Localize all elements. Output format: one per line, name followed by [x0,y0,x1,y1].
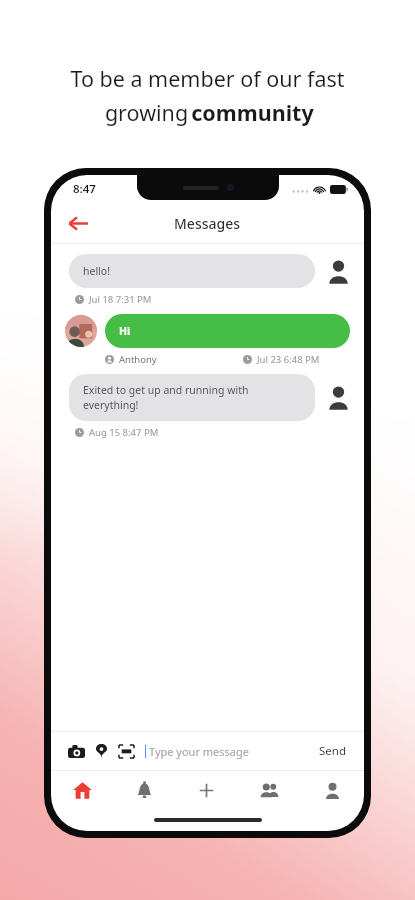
staticText: growing [102,98,191,127]
staticText: Aug 15 8:47 PM [89,426,159,439]
staticText: Type your message [149,744,249,759]
button[interactable]: Back [61,206,95,240]
button[interactable]: Add [175,771,238,809]
button[interactable]: Type your message [145,732,315,770]
button[interactable]: Send [315,739,350,763]
staticText: Anthony [119,353,157,366]
button[interactable]: Notifications [113,771,175,809]
button[interactable]: Groups [238,771,301,809]
staticText: Jul 23 6:48 PM [257,353,320,366]
staticText: To be a member of our fast [70,64,345,93]
staticText: Jul 18 7:31 PM [89,293,152,306]
staticText: hello! [83,264,111,278]
button[interactable]: Camera [65,740,87,762]
staticText: Exited to get up and running with everyt… [83,383,249,412]
button[interactable]: GIF [115,740,137,762]
staticText: Messages [174,214,241,233]
staticText: Hi [119,324,131,338]
button[interactable]: Exited to get up and running with everyt… [51,374,364,439]
button[interactable]: Hi [51,314,364,366]
staticText: community [191,98,314,127]
button[interactable]: hello! [51,254,364,306]
button[interactable]: Location [91,741,111,761]
staticText: 8:47 [73,181,96,197]
staticText: Send [319,743,346,759]
button[interactable]: Profile [301,771,364,809]
button[interactable]: Home [51,771,113,809]
